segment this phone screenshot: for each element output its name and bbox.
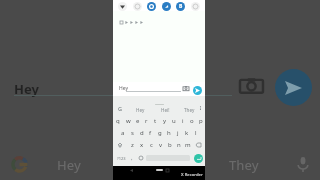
button[interactable]: g [155, 127, 164, 139]
button[interactable]: Google [116, 105, 123, 112]
button[interactable]: Toggle [133, 2, 142, 11]
button[interactable]: Wi-Fi [118, 2, 127, 11]
staticText: m [185, 141, 191, 149]
staticText: f [149, 129, 152, 137]
staticText: y [163, 117, 167, 125]
button[interactable]: w [123, 115, 133, 127]
staticText: i [182, 117, 184, 125]
button[interactable]: c [147, 139, 156, 151]
button[interactable]: Camera [182, 85, 189, 92]
staticText: e [136, 117, 140, 125]
staticText: l [195, 129, 197, 137]
staticText: t [154, 117, 157, 125]
staticText: o [190, 117, 194, 125]
button[interactable]: Bluetooth [176, 2, 185, 11]
staticText: Hey [136, 107, 145, 113]
staticText: Hey [119, 85, 128, 92]
button[interactable]: t [151, 115, 160, 127]
button[interactable]: q [113, 115, 123, 127]
button[interactable]: They [177, 106, 201, 113]
button[interactable]: z [127, 139, 137, 151]
staticText: g [158, 129, 162, 137]
button[interactable]: h [164, 127, 173, 139]
staticText: d [140, 129, 144, 137]
staticText: , [131, 154, 133, 162]
staticText: z [131, 141, 134, 149]
button[interactable]: o [187, 115, 196, 127]
staticText: k [185, 129, 189, 137]
staticText: a [121, 129, 125, 137]
button[interactable]: y [160, 115, 169, 127]
button[interactable]: Emoji [136, 151, 146, 165]
button[interactable]: Hei! [153, 106, 177, 113]
button[interactable]: Home [156, 169, 163, 171]
button[interactable]: m [183, 139, 192, 151]
staticText: s [131, 129, 134, 137]
button[interactable]: a [118, 127, 128, 139]
button[interactable]: Hey [128, 106, 152, 113]
staticText: x [140, 141, 144, 149]
button[interactable]: k [182, 127, 191, 139]
button[interactable]: Do not disturb [147, 2, 156, 11]
button[interactable]: s [128, 127, 137, 139]
staticText: c [150, 141, 153, 149]
staticText: Hey [57, 156, 81, 174]
button[interactable]: l [191, 127, 200, 139]
staticText: X Recorder [181, 172, 203, 178]
staticText: ?123 [117, 156, 126, 161]
button[interactable]: Shift [113, 139, 127, 151]
button[interactable]: x [137, 139, 147, 151]
staticText: r [145, 117, 148, 125]
staticText: They [184, 107, 195, 113]
staticText: n [177, 141, 181, 149]
button[interactable]: , [127, 151, 136, 165]
button[interactable]: Enter [194, 154, 203, 163]
staticText: u [172, 117, 176, 125]
button[interactable]: Auto rotate [162, 2, 171, 11]
staticText: v [159, 141, 163, 149]
button[interactable]: b [165, 139, 174, 151]
button[interactable]: r [142, 115, 151, 127]
staticText: Hey [14, 80, 39, 98]
button[interactable]: Backspace [192, 139, 205, 151]
staticText: p [199, 117, 203, 125]
button[interactable]: i [178, 115, 187, 127]
button[interactable]: p [196, 115, 205, 127]
button[interactable]: More [197, 105, 203, 111]
staticText: j [177, 129, 179, 137]
button[interactable]: n [174, 139, 183, 151]
button[interactable]: Send [193, 86, 202, 95]
staticText: They [229, 156, 259, 174]
button[interactable]: Toggle [191, 2, 200, 11]
staticText: Hei! [161, 107, 170, 113]
staticText: b [168, 141, 172, 149]
button[interactable]: v [156, 139, 165, 151]
button[interactable]: d [137, 127, 146, 139]
staticText: G [118, 105, 122, 112]
button[interactable]: Back [129, 168, 134, 173]
staticText: q [116, 117, 120, 125]
button[interactable]: f [146, 127, 155, 139]
button[interactable]: Recents [165, 168, 170, 173]
button[interactable]: ?123 [115, 151, 127, 165]
staticText: w [126, 117, 131, 125]
button[interactable]: u [169, 115, 178, 127]
staticText: h [167, 129, 171, 137]
staticText: B [179, 3, 183, 10]
button[interactable]: e [133, 115, 142, 127]
button[interactable]: j [173, 127, 182, 139]
